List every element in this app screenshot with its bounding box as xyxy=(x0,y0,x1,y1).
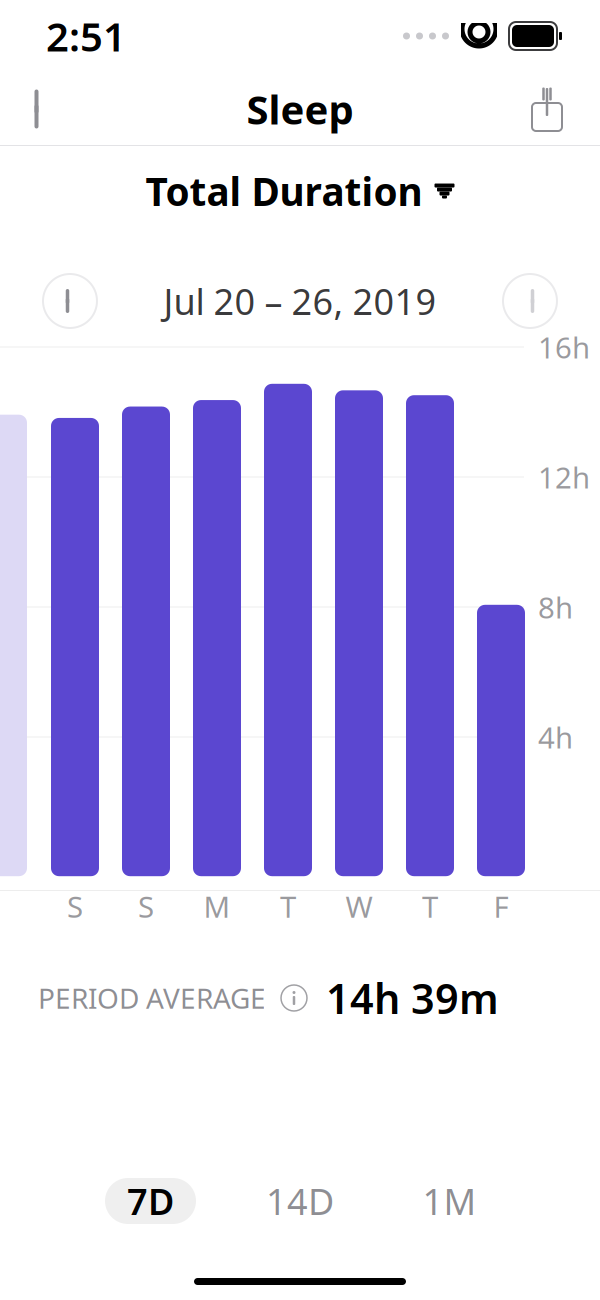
staticText: 4h xyxy=(538,717,573,756)
staticText: 7D xyxy=(127,1177,174,1225)
staticText: 14D xyxy=(266,1177,334,1225)
staticText: Jul 20 – 26, 2019 xyxy=(163,277,436,325)
staticText: T xyxy=(280,887,296,926)
staticText: 16h xyxy=(538,327,590,366)
staticText: S xyxy=(138,887,154,926)
staticText: 8h xyxy=(538,587,573,626)
button[interactable]: Back xyxy=(6,72,76,146)
staticText: F xyxy=(493,887,508,926)
staticText: T xyxy=(422,887,438,926)
button[interactable]: 1M xyxy=(404,1178,495,1224)
staticText: M xyxy=(203,887,230,926)
staticText: W xyxy=(345,887,372,926)
staticText: 12h xyxy=(538,457,590,496)
staticText: Sleep xyxy=(246,82,353,135)
staticText: S xyxy=(67,887,83,926)
button[interactable]: Total Duration xyxy=(125,146,474,236)
staticText: Total Duration xyxy=(145,165,422,217)
button[interactable]: Previous week xyxy=(40,271,100,331)
button[interactable]: 7D xyxy=(105,1178,196,1224)
staticText: 1M xyxy=(422,1177,476,1225)
staticText: 14h 39m xyxy=(326,971,499,1025)
button[interactable]: Share xyxy=(512,72,582,146)
button[interactable]: Next week xyxy=(500,271,560,331)
staticText: 2:51 xyxy=(46,9,126,62)
button[interactable]: 14D xyxy=(254,1178,345,1224)
staticText: PERIOD AVERAGE xyxy=(38,979,266,1017)
